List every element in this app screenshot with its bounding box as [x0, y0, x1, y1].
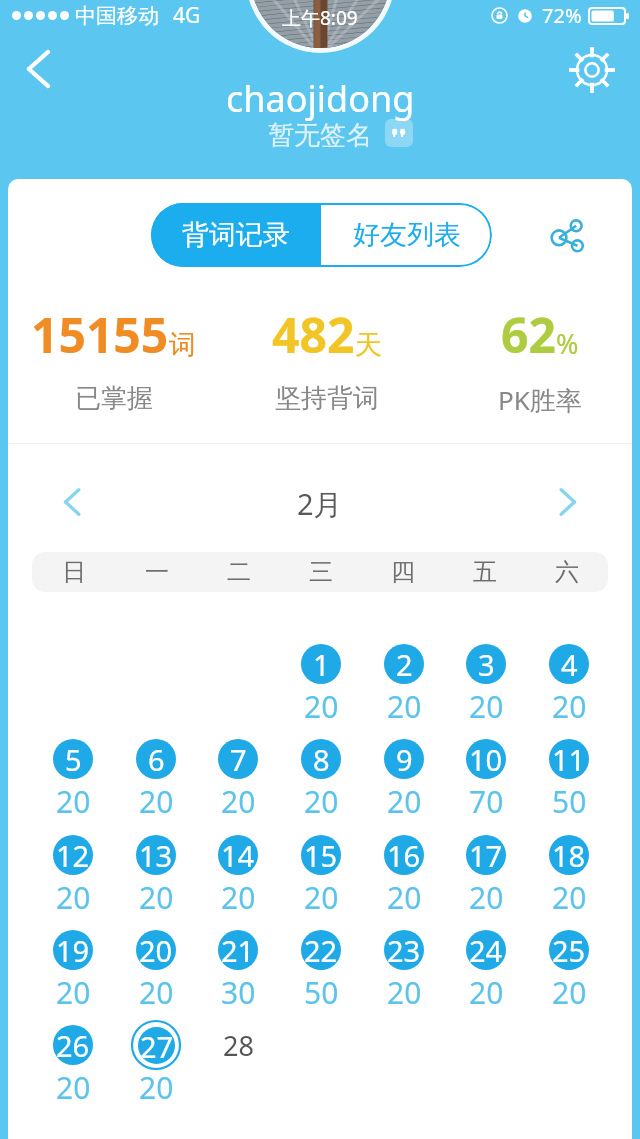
button[interactable]: 12	[32, 830, 114, 920]
staticText: 20	[304, 781, 339, 821]
button[interactable]: 24	[445, 925, 527, 1015]
staticText: 7	[230, 740, 247, 779]
button[interactable]: 23	[363, 925, 445, 1015]
staticText: 20	[56, 1067, 91, 1107]
button[interactable]: 8	[280, 734, 362, 824]
staticText: 50	[304, 972, 339, 1012]
button[interactable]: Back	[13, 44, 63, 94]
staticText: 20	[552, 686, 587, 726]
button[interactable]: Next month	[544, 478, 592, 526]
button[interactable]: 2	[363, 639, 445, 729]
staticText: 好友列表	[353, 218, 461, 252]
staticText: 5	[65, 740, 82, 779]
staticText: 30	[221, 972, 256, 1012]
staticText: 20	[56, 781, 91, 821]
staticText: 23	[387, 931, 421, 970]
staticText: 20	[387, 686, 422, 726]
staticText: 22	[304, 931, 338, 970]
staticText: 16	[387, 836, 421, 875]
staticText: 19	[56, 931, 90, 970]
staticText: 20	[387, 781, 422, 821]
staticText: 72%	[542, 2, 582, 29]
staticText: 20	[552, 972, 587, 1012]
button[interactable]: 11	[528, 734, 610, 824]
staticText: PK胜率	[498, 382, 582, 418]
button[interactable]: 16	[363, 830, 445, 920]
staticText: 12	[56, 836, 90, 875]
staticText: 20	[139, 877, 174, 917]
button[interactable]: 26	[32, 1020, 114, 1110]
button[interactable]: 62	[433, 302, 640, 418]
staticText: 2	[396, 645, 413, 684]
button[interactable]: 21	[197, 925, 279, 1015]
staticText: 20	[469, 877, 504, 917]
staticText: 17	[469, 836, 503, 875]
staticText: 8	[313, 740, 330, 779]
button[interactable]: 6	[115, 734, 197, 824]
button[interactable]: 3	[445, 639, 527, 729]
staticText: 62	[501, 302, 556, 367]
button[interactable]: 15	[280, 830, 362, 920]
button[interactable]: 4	[528, 639, 610, 729]
button[interactable]: 18	[528, 830, 610, 920]
staticText: 一	[145, 557, 169, 587]
staticText: 20	[387, 972, 422, 1012]
staticText: 六	[555, 557, 579, 587]
button[interactable]: 13	[115, 830, 197, 920]
button[interactable]: 14	[197, 830, 279, 920]
staticText: 上午8:09	[282, 5, 358, 31]
staticText: 坚持背词	[275, 382, 379, 415]
staticText: 11	[552, 740, 586, 779]
staticText: 20	[139, 931, 173, 970]
staticText: 482	[272, 302, 355, 367]
staticText: 28	[223, 1027, 254, 1064]
staticText: 15	[304, 836, 338, 875]
button[interactable]: 28	[197, 1020, 279, 1110]
staticText: 14	[221, 836, 255, 875]
button[interactable]: 20	[115, 925, 197, 1015]
staticText: 20	[139, 781, 174, 821]
button[interactable]: 482	[220, 302, 433, 415]
staticText: 日	[62, 557, 86, 587]
staticText: 26	[56, 1026, 90, 1065]
staticText: 20	[221, 781, 256, 821]
staticText: 70	[469, 781, 504, 821]
button[interactable]: 7	[197, 734, 279, 824]
button[interactable]: Settings	[568, 46, 616, 94]
staticText: 20	[56, 877, 91, 917]
staticText: 24	[469, 931, 503, 970]
button[interactable]: 5	[32, 734, 114, 824]
staticText: 二	[227, 557, 251, 587]
button[interactable]: 9	[363, 734, 445, 824]
staticText: 20	[304, 686, 339, 726]
button[interactable]: 25	[528, 925, 610, 1015]
staticText: 天	[355, 328, 382, 362]
staticText: 18	[552, 836, 586, 875]
staticText: chaojidong	[226, 74, 415, 123]
staticText: 4G	[173, 1, 201, 30]
button[interactable]: 19	[32, 925, 114, 1015]
staticText: 20	[56, 972, 91, 1012]
button[interactable]: 15155	[7, 302, 220, 415]
button[interactable]: Share	[539, 207, 595, 263]
button[interactable]: 好友列表	[321, 203, 492, 267]
staticText: 25	[552, 931, 586, 970]
staticText: 1	[313, 645, 330, 684]
button[interactable]: 1	[280, 639, 362, 729]
staticText: 50	[552, 781, 587, 821]
button[interactable]: 17	[445, 830, 527, 920]
staticText: 9	[396, 740, 413, 779]
staticText: 10	[469, 740, 503, 779]
button[interactable]: 22	[280, 925, 362, 1015]
staticText: 背词记录	[182, 218, 290, 252]
button[interactable]: 27	[115, 1020, 197, 1110]
button[interactable]: 10	[445, 734, 527, 824]
staticText: 20	[469, 686, 504, 726]
staticText: 13	[139, 836, 173, 875]
staticText: %	[556, 325, 579, 362]
staticText: 3	[478, 645, 495, 684]
button[interactable]: 背词记录	[151, 203, 321, 267]
button[interactable]: Previous month	[48, 478, 96, 526]
staticText: 4	[561, 645, 578, 684]
staticText: 三	[309, 557, 333, 587]
